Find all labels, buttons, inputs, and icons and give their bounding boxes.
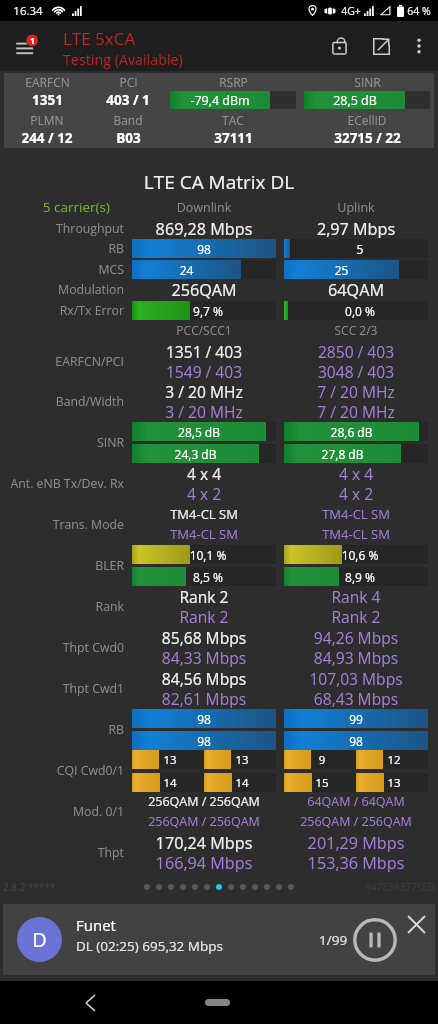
staticText: 9,7 % (136, 303, 280, 319)
staticText: ECellID (347, 112, 387, 128)
button[interactable]: Back (70, 983, 110, 1023)
staticText: SINR (354, 74, 381, 90)
staticText: 37111 (214, 129, 253, 147)
staticText: 64 % (407, 4, 431, 18)
staticText: 13 (134, 752, 206, 768)
staticText: D (32, 926, 47, 953)
staticText: 28,5 dB (333, 92, 377, 109)
button[interactable]: More options (402, 29, 436, 63)
staticText: 13 (206, 752, 278, 768)
staticText: 947838377SED (365, 880, 435, 894)
staticText: 2,97 Mbps (284, 218, 428, 238)
staticText: Thpt Cwd0 (0, 639, 124, 656)
staticText: 84,33 Mbps (132, 647, 276, 667)
button[interactable]: Share (360, 25, 402, 67)
staticText: RB (0, 240, 124, 257)
staticText: 98 (132, 711, 276, 727)
staticText: 84,93 Mbps (284, 647, 428, 667)
staticText: 4 x 4 (132, 463, 276, 483)
staticText: 869,28 Mbps (132, 218, 276, 238)
staticText: 3048 / 403 (284, 361, 428, 381)
staticText: Rx/Tx Error (0, 302, 124, 319)
staticText: 1549 / 403 (132, 361, 276, 381)
staticText: LTE 5xCA (63, 27, 136, 50)
staticText: Rank 4 (284, 586, 428, 606)
staticText: 9 (286, 752, 358, 768)
staticText: 3 / 20 MHz (132, 401, 276, 421)
staticText: 85,68 Mbps (132, 627, 276, 647)
staticText: PCC/SCC1 (132, 322, 276, 338)
staticText: 256QAM / 256QAM (132, 793, 276, 810)
staticText: EARFCN (25, 74, 70, 90)
button[interactable]: Home (205, 999, 230, 1006)
staticText: 64QAM / 64QAM (284, 793, 428, 810)
staticText: 10,1 % (136, 547, 280, 563)
staticText: 1351 (32, 91, 63, 109)
staticText: 4 x 2 (284, 483, 428, 503)
staticText: 1/99 (319, 931, 348, 949)
staticText: 16.34 (13, 3, 43, 19)
staticText: 94,26 Mbps (284, 627, 428, 647)
staticText: 24 (132, 262, 241, 278)
staticText: 99 (284, 711, 428, 727)
staticText: 13 (358, 775, 430, 791)
staticText: TM4-CL SM (284, 505, 428, 523)
staticText: Band/Width (0, 393, 124, 410)
staticText: 170,24 Mbps (132, 832, 276, 852)
button[interactable]: Pause (350, 915, 400, 965)
staticText: Trans. Mode (0, 516, 124, 533)
staticText: 27,8 dB (284, 446, 401, 462)
staticText: 4 x 4 (284, 463, 428, 483)
staticText: Rank 2 (132, 606, 276, 626)
staticText: EARFCN/PCI (0, 353, 124, 370)
button[interactable]: Menu (8, 24, 52, 68)
staticText: 5 (288, 241, 432, 257)
staticText: Modulation (0, 281, 124, 298)
staticText: Funet (76, 915, 116, 935)
staticText: RB (0, 721, 124, 738)
staticText: 166,94 Mbps (132, 852, 276, 872)
staticText: 10,6 % (288, 547, 432, 563)
button[interactable]: Lock (318, 25, 360, 67)
staticText: 14 (134, 775, 206, 791)
staticText: Throughput (0, 220, 124, 237)
staticText: 28,6 dB (284, 424, 419, 440)
staticText: Testing (Available) (63, 50, 183, 69)
staticText: 98 (132, 241, 276, 257)
staticText: 201,29 Mbps (284, 832, 428, 852)
staticText: 153,36 Mbps (284, 852, 428, 872)
staticText: 8,5 % (136, 569, 280, 585)
staticText: Ant. eNB Tx/Dev. Rx (0, 475, 124, 492)
staticText: 98 (132, 733, 276, 749)
staticText: PLMN (30, 112, 64, 128)
staticText: 14 (206, 775, 278, 791)
staticText: 84,56 Mbps (132, 668, 276, 688)
staticText: 0,0 % (288, 303, 432, 319)
staticText: 25 (284, 262, 399, 278)
staticText: Uplink (284, 199, 428, 216)
staticText: Band (113, 112, 143, 128)
staticText: PCI (119, 74, 138, 90)
staticText: 24,3 dB (132, 446, 259, 462)
staticText: 32715 / 22 (334, 129, 401, 147)
staticText: 4G+ (341, 4, 361, 18)
staticText: 5 carrier(s) (0, 198, 110, 216)
staticText: TAC (222, 112, 244, 128)
staticText: SCC 2/3 (284, 322, 428, 338)
staticText: Thpt Cwd1 (0, 680, 124, 697)
button[interactable]: Close (401, 909, 431, 939)
staticText: 28,5 dB (132, 424, 266, 440)
staticText: 256QAM (132, 279, 276, 299)
staticText: 64QAM (284, 279, 428, 299)
staticText: 12 (358, 752, 430, 768)
staticText: Rank 2 (284, 606, 428, 626)
staticText: TM4-CL SM (132, 505, 276, 523)
staticText: 1351 / 403 (132, 341, 276, 361)
staticText: 244 / 12 (21, 129, 73, 147)
staticText: Downlink (132, 199, 276, 216)
staticText: Thpt (0, 844, 124, 861)
staticText: 2.8.2 ***** (3, 880, 56, 894)
staticText: 8,9 % (288, 569, 432, 585)
staticText: 107,03 Mbps (284, 668, 428, 688)
staticText: -79,4 dBm (190, 92, 250, 109)
